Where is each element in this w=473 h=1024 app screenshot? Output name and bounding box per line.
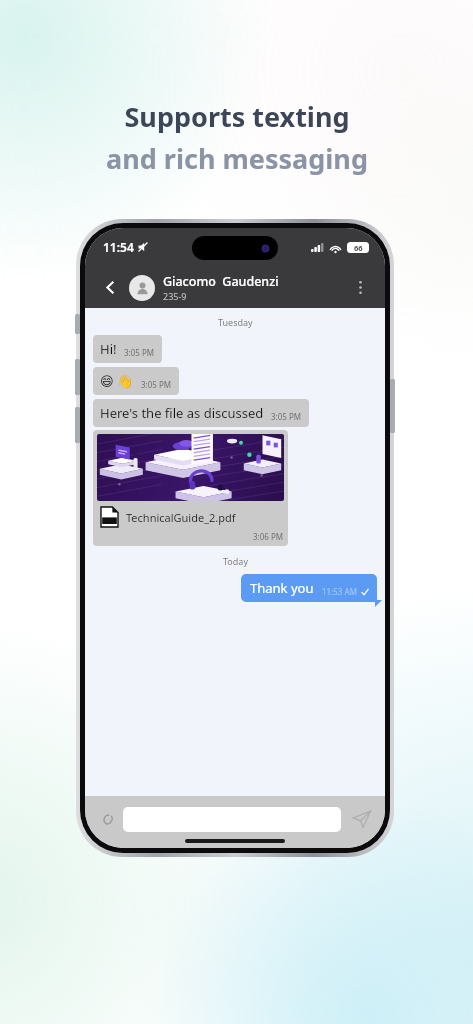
staticText: and rich messaging <box>106 140 368 177</box>
staticText: Giacomo Gaudenzi <box>163 273 279 290</box>
staticText: 3:06 PM <box>253 531 284 542</box>
staticText: 3:05 PM <box>271 411 302 422</box>
button[interactable]: Giacomo Gaudenzi <box>129 273 347 302</box>
button[interactable]: TechnicalGuide_2.pdf <box>93 430 288 546</box>
staticText: Hi! <box>100 340 117 358</box>
staticText: 11:53 AM <box>322 586 357 597</box>
staticText: Tuesday <box>218 316 253 328</box>
button[interactable] <box>123 807 341 832</box>
staticText: TechnicalGuide_2.pdf <box>126 510 236 525</box>
staticText: 11:54 <box>103 239 134 255</box>
staticText: Today <box>223 555 248 567</box>
staticText: 235-9 <box>163 290 187 302</box>
button[interactable]: More options <box>347 274 373 300</box>
button[interactable]: Send <box>347 804 377 834</box>
button[interactable]: Thank you <box>241 574 377 602</box>
staticText: 3:05 PM <box>124 347 155 358</box>
staticText: 😄 👋 <box>100 372 134 390</box>
staticText: Thank you <box>250 579 314 597</box>
button[interactable]: Here's the file as discussed <box>93 399 309 427</box>
staticText: Supports texting <box>124 98 350 135</box>
button[interactable]: Hi! <box>93 335 162 363</box>
staticText: 66 <box>354 243 363 253</box>
staticText: 3:05 PM <box>141 379 172 390</box>
button[interactable]: Back <box>97 274 123 300</box>
button[interactable]: Attach file <box>93 805 121 833</box>
staticText: Here's the file as discussed <box>100 404 264 422</box>
button[interactable]: 😄 👋 <box>93 367 179 395</box>
